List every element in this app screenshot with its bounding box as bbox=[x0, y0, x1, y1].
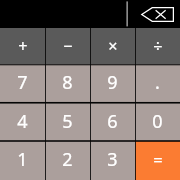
button[interactable]: 4 bbox=[0, 103, 45, 142]
staticText: 8 bbox=[62, 70, 73, 95]
button[interactable]: 5 bbox=[45, 103, 90, 142]
button[interactable]: 0 bbox=[135, 103, 180, 142]
button[interactable]: Backspace bbox=[141, 7, 174, 22]
button[interactable]: 1 bbox=[0, 141, 45, 180]
staticText: + bbox=[18, 35, 28, 57]
button[interactable]: ÷ bbox=[135, 28, 180, 64]
button[interactable]: 3 bbox=[90, 141, 135, 180]
staticText: 5 bbox=[62, 109, 73, 134]
button[interactable]: × bbox=[90, 28, 135, 64]
staticText: 1 bbox=[17, 147, 28, 172]
staticText: 0 bbox=[152, 109, 163, 134]
button[interactable]: + bbox=[0, 28, 45, 64]
staticText: − bbox=[63, 35, 73, 57]
staticText: . bbox=[155, 70, 160, 95]
staticText: 3 bbox=[107, 147, 118, 172]
button[interactable]: 8 bbox=[45, 64, 90, 103]
button[interactable]: − bbox=[45, 28, 90, 64]
button[interactable]: 7 bbox=[0, 64, 45, 103]
button[interactable]: 9 bbox=[90, 64, 135, 103]
staticText: 6 bbox=[107, 109, 118, 134]
staticText: 2 bbox=[62, 147, 73, 172]
button[interactable]: . bbox=[135, 64, 180, 103]
staticText: 7 bbox=[17, 70, 28, 95]
staticText: × bbox=[108, 35, 118, 57]
staticText: = bbox=[153, 148, 163, 170]
staticText: ÷ bbox=[153, 35, 163, 57]
button[interactable]: 2 bbox=[45, 141, 90, 180]
staticText: 4 bbox=[17, 109, 28, 134]
button[interactable]: 6 bbox=[90, 103, 135, 142]
button[interactable]: = bbox=[135, 141, 180, 180]
staticText: 9 bbox=[107, 70, 118, 95]
